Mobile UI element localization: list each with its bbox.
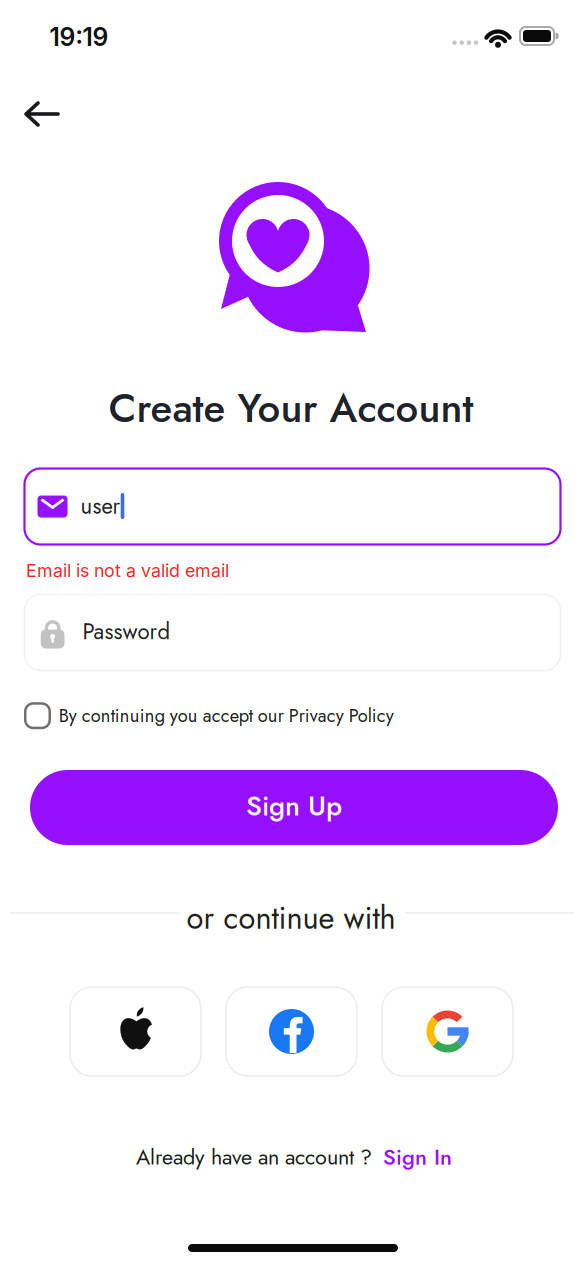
button[interactable]: Sign In: [383, 1141, 452, 1173]
staticText: 19:19: [49, 22, 108, 52]
staticText: Already have an account ?: [136, 1141, 372, 1173]
staticText: Sign Up: [246, 786, 342, 826]
button[interactable]: Back: [17, 89, 67, 139]
button[interactable]: Continue with Facebook: [226, 987, 357, 1076]
staticText: By continuing you accept our Privacy Pol…: [59, 703, 394, 729]
button[interactable]: By continuing you accept our Privacy Pol…: [25, 703, 394, 729]
staticText: Create Your Account: [108, 379, 473, 437]
staticText: or continue with: [186, 896, 395, 940]
button[interactable]: Sign Up: [30, 770, 558, 845]
button[interactable]: Continue with Google: [382, 987, 513, 1076]
staticText: user: [80, 490, 120, 522]
button[interactable]: Continue with Apple: [70, 987, 201, 1076]
staticText: Email is not a valid email: [26, 560, 229, 581]
staticText: Password: [82, 615, 170, 647]
staticText: Sign In: [383, 1141, 452, 1173]
